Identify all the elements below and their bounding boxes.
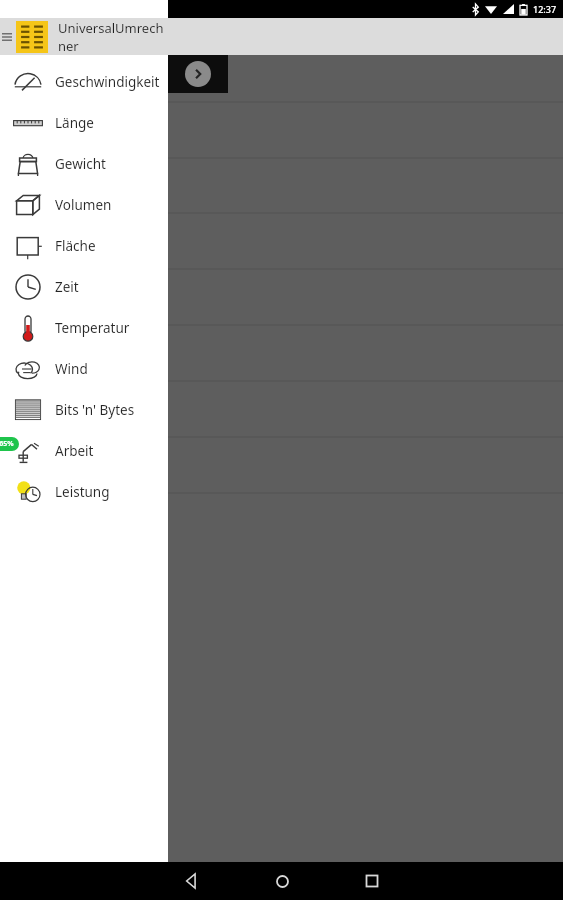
button[interactable]: Gewicht	[0, 143, 168, 184]
button[interactable]: Back	[162, 862, 222, 900]
button[interactable]: Zeit	[0, 266, 168, 307]
button[interactable]: Next	[185, 61, 211, 87]
staticText: Temperatur	[55, 319, 130, 337]
staticText: Volumen	[55, 196, 112, 214]
staticText: UniversalUmrechner	[58, 19, 168, 55]
staticText: Länge	[55, 114, 94, 132]
staticText: Geschwindigkeit	[55, 73, 160, 91]
staticText: Fläche	[55, 237, 96, 255]
button[interactable]: Temperatur	[0, 307, 168, 348]
button[interactable]: Wind	[0, 348, 168, 389]
staticText: 12:37	[533, 3, 557, 15]
button[interactable]: Geschwindigkeit	[0, 61, 168, 102]
staticText: Gewicht	[55, 155, 106, 173]
button[interactable]: Home	[252, 862, 312, 900]
staticText: Zeit	[55, 278, 79, 296]
button[interactable]: Bits 'n' Bytes	[0, 389, 168, 430]
button[interactable]: Leistung	[0, 471, 168, 512]
staticText: Wind	[55, 360, 88, 378]
button[interactable]: Volumen	[0, 184, 168, 225]
button[interactable]: Fläche	[0, 225, 168, 266]
button[interactable]: Recents	[342, 862, 402, 900]
staticText: Bits 'n' Bytes	[55, 401, 135, 419]
button[interactable]: 65%	[0, 430, 168, 471]
staticText: 65%	[0, 439, 14, 449]
button[interactable]: UniversalUmrechner	[0, 18, 168, 55]
staticText: Leistung	[55, 483, 110, 501]
button[interactable]: Länge	[0, 102, 168, 143]
staticText: Arbeit	[55, 442, 94, 460]
